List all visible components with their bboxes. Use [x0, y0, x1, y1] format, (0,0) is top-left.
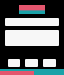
button[interactable]	[8, 59, 20, 67]
button[interactable]	[43, 59, 56, 67]
button[interactable]	[5, 18, 59, 26]
button[interactable]	[25, 59, 38, 67]
button[interactable]	[5, 30, 59, 46]
